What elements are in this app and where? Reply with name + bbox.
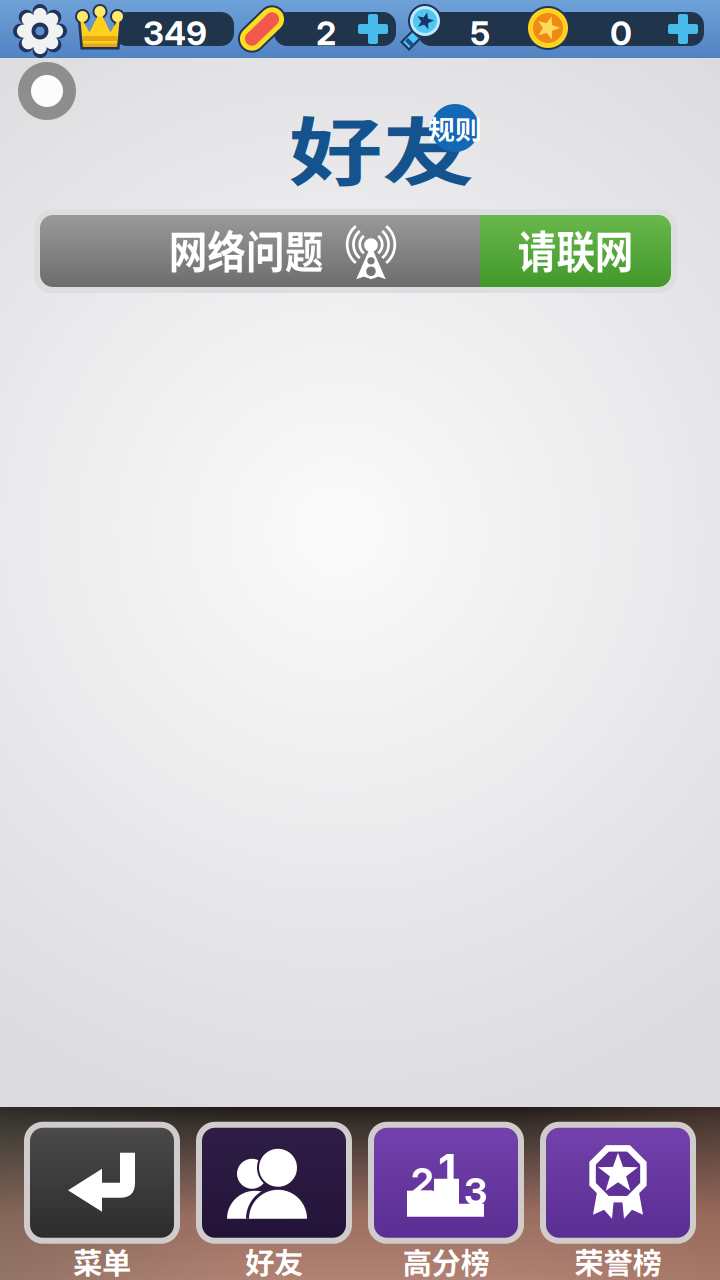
staticText: 2 bbox=[411, 1159, 434, 1204]
staticText: 3 bbox=[464, 1169, 487, 1214]
staticText: 349 bbox=[143, 13, 207, 53]
button[interactable]: 网络问题 bbox=[34, 209, 677, 293]
button[interactable]: 菜单 bbox=[24, 1122, 180, 1280]
staticText: 5 bbox=[470, 13, 490, 53]
staticText: 2 bbox=[316, 13, 336, 53]
button[interactable]: Rules bbox=[428, 104, 482, 152]
staticText: 好友 bbox=[289, 93, 475, 228]
button[interactable]: Add coins bbox=[666, 12, 700, 46]
staticText: 0 bbox=[610, 13, 632, 53]
button[interactable]: Add boosters bbox=[356, 12, 390, 46]
button[interactable]: Settings bbox=[14, 5, 66, 57]
staticText: 请联网 bbox=[491, 208, 659, 290]
staticText: 网络问题 bbox=[134, 208, 358, 290]
button[interactable]: 2 bbox=[368, 1122, 524, 1280]
staticText: 好友 bbox=[245, 1240, 303, 1280]
staticText: 菜单 bbox=[73, 1240, 131, 1280]
staticText: 规则 bbox=[428, 109, 482, 147]
button[interactable]: 荣誉榜 bbox=[540, 1122, 696, 1280]
staticText: 高分榜 bbox=[402, 1240, 489, 1280]
button[interactable]: 好友 bbox=[196, 1122, 352, 1280]
staticText: 1 bbox=[438, 1144, 456, 1195]
staticText: 荣誉榜 bbox=[574, 1240, 661, 1280]
